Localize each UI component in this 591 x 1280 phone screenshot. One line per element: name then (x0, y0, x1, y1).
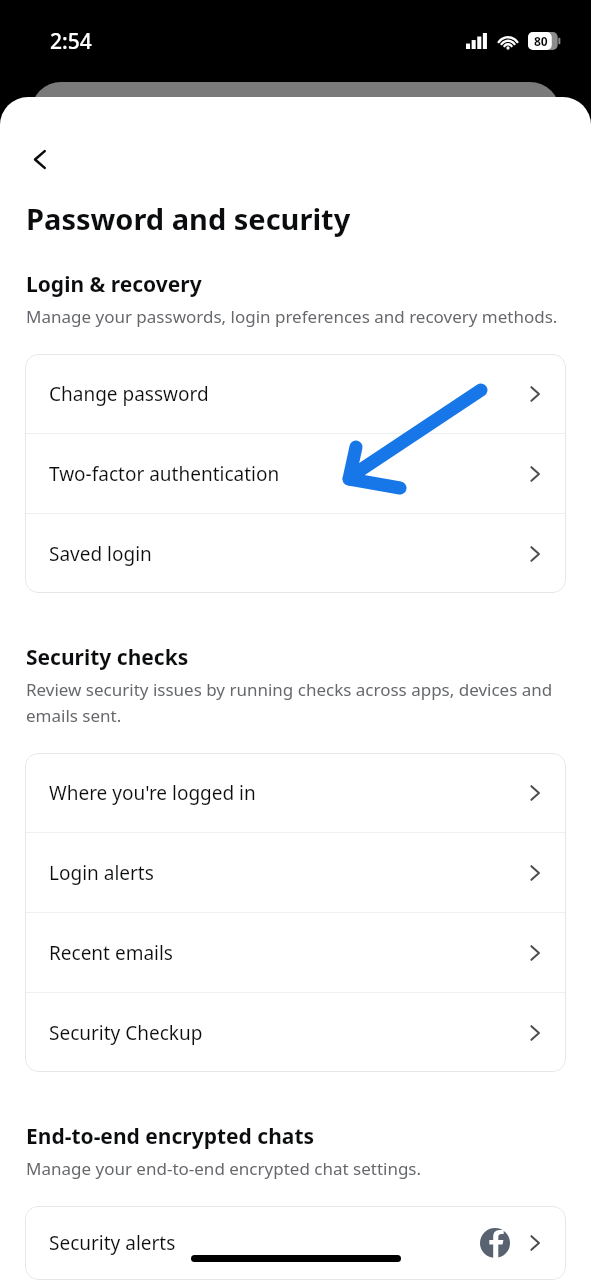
staticText: Two-factor authentication (49, 461, 526, 487)
button[interactable]: Two-factor authentication (25, 434, 566, 513)
staticText: Where you're logged in (49, 780, 526, 806)
button[interactable]: Security Checkup (25, 993, 566, 1072)
button[interactable]: Saved login (25, 514, 566, 593)
staticText: Login & recovery (26, 270, 202, 299)
button[interactable]: Login alerts (25, 833, 566, 912)
staticText: Security Checkup (49, 1020, 526, 1046)
staticText: Security alerts (49, 1230, 480, 1256)
staticText: Recent emails (49, 940, 526, 966)
staticText: Manage your end-to-end encrypted chat se… (26, 1157, 422, 1180)
staticText: Password and security (26, 199, 351, 238)
staticText: Manage your passwords, login preferences… (26, 305, 558, 328)
button[interactable]: Back (18, 137, 62, 181)
button[interactable]: Recent emails (25, 913, 566, 992)
button[interactable]: Where you're logged in (25, 753, 566, 832)
staticText: Review security issues by running checks… (26, 678, 567, 727)
staticText: 2:54 (50, 27, 92, 56)
staticText: End-to-end encrypted chats (26, 1122, 315, 1151)
staticText: 80 (534, 33, 548, 49)
staticText: Security checks (26, 643, 189, 672)
staticText: Change password (49, 381, 526, 407)
button[interactable]: Change password (25, 354, 566, 433)
button[interactable]: Security alerts (25, 1206, 566, 1280)
staticText: Login alerts (49, 860, 526, 886)
staticText: Saved login (49, 541, 526, 567)
